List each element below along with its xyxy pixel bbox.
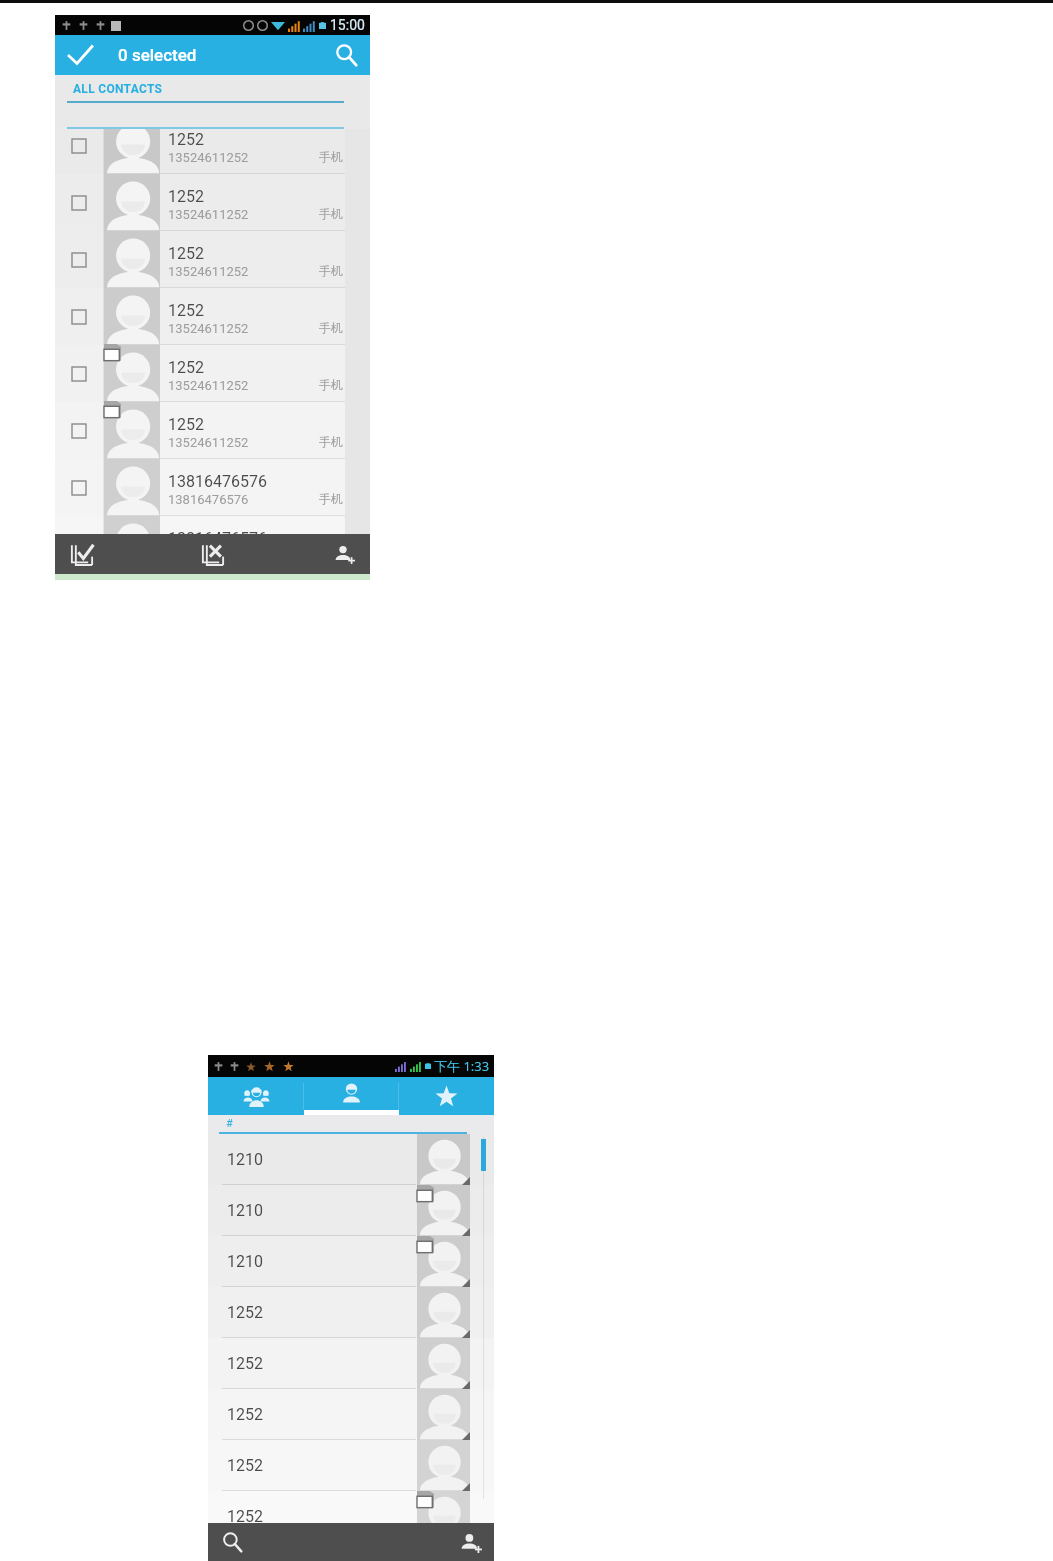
staticText: 1252 xyxy=(168,187,204,206)
button[interactable]: Search xyxy=(208,1523,256,1561)
button[interactable]: Add contact xyxy=(448,1523,494,1561)
staticText: 下午 1:33 xyxy=(434,1057,490,1075)
button[interactable]: 1252 xyxy=(208,1389,494,1440)
staticText: ALL CONTACTS xyxy=(73,82,163,96)
button[interactable]: Add contact xyxy=(320,534,370,574)
button[interactable]: 1252 xyxy=(55,345,345,402)
button[interactable]: 1252 xyxy=(208,1440,494,1491)
button[interactable]: 1252 xyxy=(55,402,345,459)
button[interactable]: 1252 xyxy=(55,231,345,288)
button[interactable]: 1252 xyxy=(55,288,345,345)
staticText: 13816476576 xyxy=(168,472,267,491)
staticText: 13524611252 xyxy=(168,150,249,165)
staticText: 13524611252 xyxy=(168,321,249,336)
button[interactable]: 13816476576 xyxy=(55,516,345,534)
button[interactable]: 1210 xyxy=(208,1185,494,1236)
staticText: 1252 xyxy=(168,130,204,149)
staticText: 手机 xyxy=(319,149,343,164)
staticText: 13816476576 xyxy=(168,492,249,507)
button[interactable]: 1252 xyxy=(55,129,345,174)
staticText: 1252 xyxy=(168,415,204,434)
button[interactable]: Groups xyxy=(208,1077,304,1115)
staticText: 13524611252 xyxy=(168,435,249,450)
button[interactable]: Done xyxy=(55,35,109,75)
staticText: 1252 xyxy=(168,244,204,263)
staticText: 手机 xyxy=(319,206,343,221)
staticText: 1252 xyxy=(227,1303,263,1322)
button[interactable]: 1252 xyxy=(208,1338,494,1389)
staticText: 13524611252 xyxy=(168,264,249,279)
staticText: 13524611252 xyxy=(168,378,249,393)
staticText: 13816476576 xyxy=(168,529,267,534)
staticText: 1210 xyxy=(227,1201,263,1220)
button[interactable]: 1252 xyxy=(208,1491,494,1523)
staticText: 1252 xyxy=(227,1405,263,1424)
staticText: 1252 xyxy=(227,1456,263,1475)
button[interactable]: Contacts xyxy=(304,1077,399,1115)
staticText: 15:00 xyxy=(330,17,365,33)
button[interactable]: 1252 xyxy=(208,1287,494,1338)
staticText: 手机 xyxy=(319,320,343,335)
staticText: 1252 xyxy=(227,1507,263,1523)
staticText: 手机 xyxy=(319,263,343,278)
staticText: # xyxy=(226,1117,233,1130)
button[interactable]: 1210 xyxy=(208,1134,494,1185)
staticText: 13524611252 xyxy=(168,207,249,222)
staticText: 1252 xyxy=(168,358,204,377)
staticText: 1252 xyxy=(168,301,204,320)
staticText: 1252 xyxy=(227,1354,263,1373)
button[interactable]: 1252 xyxy=(55,174,345,231)
staticText: 手机 xyxy=(319,377,343,392)
button[interactable]: 1210 xyxy=(208,1236,494,1287)
button[interactable]: 13816476576 xyxy=(55,459,345,516)
button[interactable]: Deselect all xyxy=(186,534,240,574)
staticText: 0 selected xyxy=(118,45,197,65)
button[interactable]: Search xyxy=(322,35,370,75)
staticText: 1210 xyxy=(227,1252,263,1271)
staticText: 手机 xyxy=(319,434,343,449)
staticText: 手机 xyxy=(319,491,343,506)
staticText: 1210 xyxy=(227,1150,263,1169)
button[interactable]: Select all xyxy=(55,534,109,574)
button[interactable]: Favorites xyxy=(399,1077,494,1115)
